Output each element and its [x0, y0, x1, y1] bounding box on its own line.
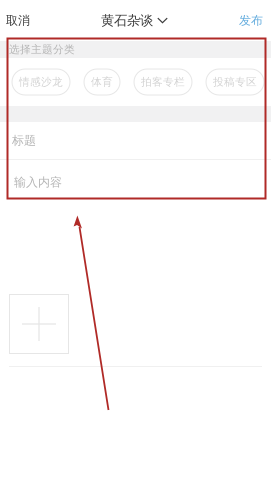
staticText: 黄石杂谈 — [101, 12, 153, 29]
button[interactable]: 取消 — [0, 2, 40, 38]
staticText: 体育 — [91, 75, 113, 88]
staticText: 拍客专栏 — [141, 75, 185, 88]
staticText: 投稿专区 — [213, 75, 257, 88]
button[interactable]: 发布 — [229, 2, 271, 38]
button[interactable]: Add photo — [9, 294, 69, 354]
button[interactable]: 拍客专栏 — [134, 69, 192, 95]
button[interactable]: 体育 — [84, 69, 120, 95]
staticText: 标题 — [12, 133, 36, 148]
staticText: 取消 — [6, 13, 30, 28]
staticText: 发布 — [239, 13, 263, 28]
staticText: 情感沙龙 — [19, 75, 63, 88]
button[interactable]: 黄石杂谈 — [101, 2, 168, 38]
staticText: 选择主题分类 — [9, 43, 75, 56]
button[interactable]: 投稿专区 — [206, 69, 264, 95]
button[interactable]: 情感沙龙 — [12, 69, 70, 95]
staticText: 输入内容 — [14, 175, 62, 190]
